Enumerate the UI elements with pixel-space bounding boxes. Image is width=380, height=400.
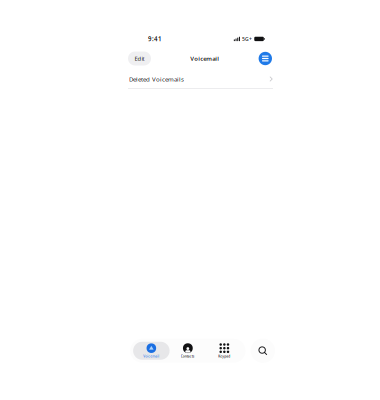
button[interactable]: Search — [251, 338, 275, 363]
staticText: Voicemail — [190, 55, 219, 62]
staticText: Edit — [134, 55, 144, 62]
button[interactable]: Voicemail Greeting — [259, 52, 272, 65]
staticText: Deleted Voicemails — [129, 75, 184, 83]
staticText: 5G+ — [242, 36, 252, 42]
staticText: Voicemail — [143, 354, 159, 358]
button[interactable]: Edit — [128, 51, 151, 65]
staticText: 9:41 — [148, 35, 162, 43]
staticText: Contacts — [181, 354, 195, 358]
button[interactable]: Keypad — [206, 342, 243, 360]
button[interactable]: Deleted Voicemails — [122, 70, 276, 88]
staticText: Keypad — [218, 354, 230, 358]
button[interactable]: Contacts — [170, 342, 206, 360]
button[interactable]: Voicemail — [133, 342, 170, 360]
